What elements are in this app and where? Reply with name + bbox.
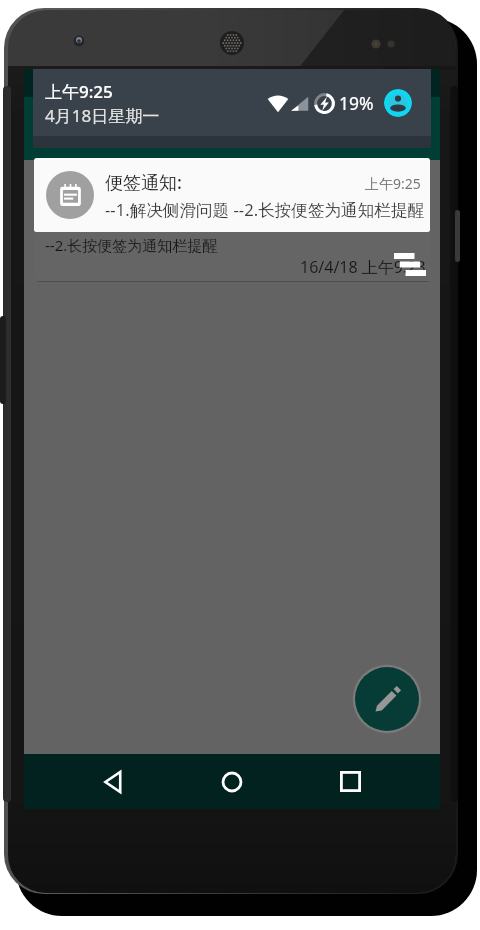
staticText: 上午9:25 — [365, 174, 421, 193]
staticText: 上午9:25 — [45, 80, 113, 103]
staticText: 19% — [339, 91, 374, 115]
staticText: 4月18日星期一 — [45, 104, 160, 127]
button[interactable]: New note — [351, 663, 423, 735]
button[interactable]: Back — [86, 754, 142, 809]
staticText: 16/4/18 上午9:23 — [300, 256, 426, 278]
staticText: --2.长按便签为通知栏提醒 — [45, 235, 218, 255]
staticText: --1.解决侧滑问题 --2.长按便签为通知栏提醒 — [105, 198, 425, 221]
button[interactable]: User — [384, 89, 412, 117]
button[interactable]: --2.长按便签为通知栏提醒 — [35, 232, 431, 282]
staticText: 便签通知: — [105, 170, 182, 195]
button[interactable]: Home — [204, 754, 260, 809]
button[interactable]: 便签通知: — [34, 158, 430, 232]
button[interactable]: Recents — [322, 754, 378, 809]
